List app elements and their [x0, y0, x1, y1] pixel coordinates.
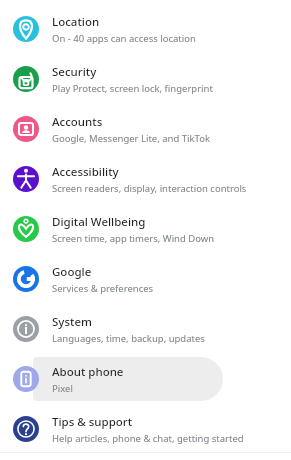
staticText: Accounts — [52, 114, 103, 130]
staticText: Play Protect, screen lock, fingerprint — [52, 82, 213, 95]
staticText: On - 40 apps can access location — [52, 32, 196, 45]
button[interactable]: Location — [0, 4, 291, 54]
staticText: Services & preferences — [52, 282, 154, 295]
staticText: Digital Wellbeing — [52, 214, 146, 230]
button[interactable]: Security — [0, 54, 291, 104]
staticText: Tips & support — [52, 414, 133, 430]
staticText: Security — [52, 64, 97, 80]
staticText: About phone — [52, 364, 124, 380]
staticText: System — [52, 314, 92, 330]
staticText: Screen time, app timers, Wind Down — [52, 232, 215, 245]
staticText: Pixel — [52, 382, 73, 395]
button[interactable]: Tips & support — [0, 404, 291, 454]
staticText: Accessibility — [52, 164, 119, 180]
staticText: Screen readers, display, interaction con… — [52, 182, 247, 195]
button[interactable]: System — [0, 304, 291, 354]
staticText: Google — [52, 264, 92, 280]
button[interactable]: Digital Wellbeing — [0, 204, 291, 254]
button[interactable]: Accessibility — [0, 154, 291, 204]
staticText: Help articles, phone & chat, getting sta… — [52, 432, 244, 445]
button[interactable]: Google — [0, 254, 291, 304]
button[interactable]: Accounts — [0, 104, 291, 154]
staticText: Google, Messenger Lite, and TikTok — [52, 132, 210, 145]
staticText: Location — [52, 14, 100, 30]
button[interactable]: About phone — [0, 354, 291, 404]
staticText: Languages, time, backup, updates — [52, 332, 205, 345]
